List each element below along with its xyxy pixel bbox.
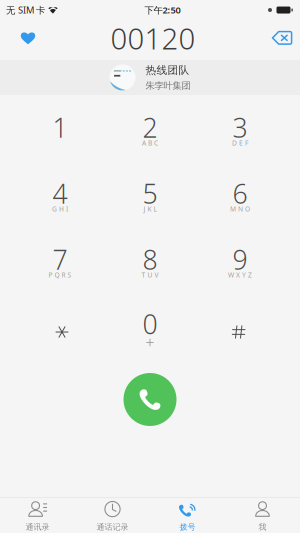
- button[interactable]: Favorites: [0, 20, 46, 60]
- staticText: 3: [232, 110, 247, 145]
- staticText: 4: [52, 176, 67, 211]
- staticText: 0: [142, 306, 157, 342]
- staticText: M N O: [230, 205, 250, 213]
- button[interactable]: [195, 294, 285, 360]
- staticText: J K L: [143, 205, 156, 213]
- staticText: P Q R S: [48, 271, 71, 279]
- button[interactable]: 4: [15, 162, 105, 228]
- staticText: 5: [142, 176, 157, 211]
- staticText: 7: [52, 242, 67, 277]
- button[interactable]: 2: [105, 96, 195, 162]
- staticText: W X Y Z: [228, 271, 252, 279]
- staticText: D E F: [232, 139, 248, 147]
- button[interactable]: 拨号: [150, 498, 225, 533]
- staticText: T U V: [141, 271, 158, 279]
- staticText: 6: [232, 176, 247, 211]
- staticText: 热线团队: [145, 64, 189, 77]
- button[interactable]: 0: [105, 294, 195, 360]
- staticText: 无 SIM 卡: [6, 4, 45, 16]
- button[interactable]: 3: [195, 96, 285, 162]
- button[interactable]: 通话记录: [75, 498, 150, 533]
- staticText: 通讯录: [25, 522, 49, 532]
- staticText: A B C: [142, 139, 158, 147]
- button[interactable]: Delete: [254, 20, 300, 60]
- button[interactable]: 7: [15, 228, 105, 294]
- button[interactable]: 8: [105, 228, 195, 294]
- button[interactable]: 5: [105, 162, 195, 228]
- staticText: 2: [142, 110, 157, 145]
- staticText: 我: [258, 522, 266, 532]
- staticText: G H I: [52, 205, 68, 213]
- staticText: 00120: [110, 18, 195, 57]
- button[interactable]: [15, 294, 105, 360]
- button[interactable]: Call: [123, 373, 176, 426]
- staticText: 下午2:50: [144, 4, 180, 16]
- staticText: 拨号: [179, 522, 195, 532]
- staticText: 朱孛叶集团: [145, 80, 190, 91]
- staticText: 9: [232, 242, 247, 277]
- button[interactable]: 热线团队: [0, 60, 300, 95]
- button[interactable]: 9: [195, 228, 285, 294]
- staticText: 1: [52, 110, 67, 145]
- button[interactable]: 通讯录: [0, 498, 75, 533]
- button[interactable]: 我: [225, 498, 300, 533]
- button[interactable]: 1: [15, 96, 105, 162]
- staticText: 通话记录: [96, 522, 128, 532]
- staticText: 8: [142, 242, 157, 277]
- button[interactable]: 6: [195, 162, 285, 228]
